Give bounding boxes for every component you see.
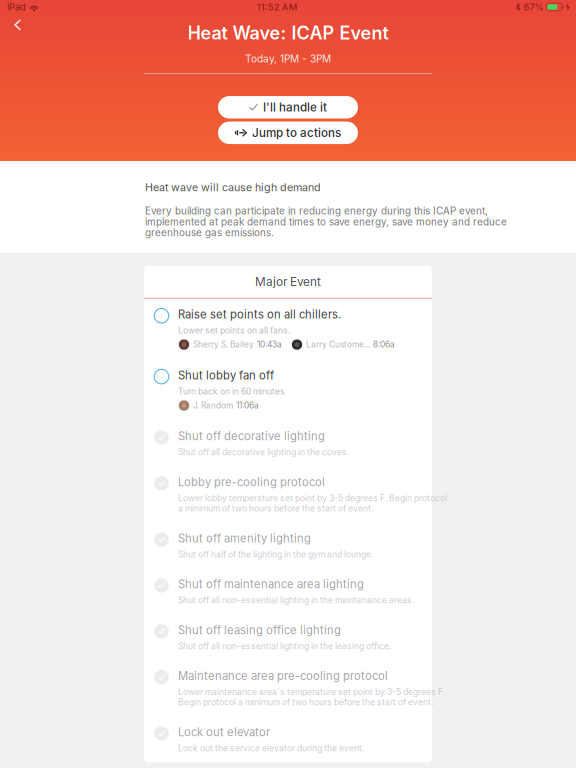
staticText: Lock out elevator (178, 725, 270, 739)
staticText: Shut lobby fan off (178, 369, 274, 382)
staticText: Lobby pre-cooling protocol (178, 475, 325, 489)
button[interactable]: Raise set points on all chillers. (144, 299, 432, 360)
staticText: Major Event (255, 274, 321, 289)
staticText: Turn back on in 60 minutes (178, 386, 285, 396)
button[interactable]: Shut off leasing office lighting (144, 614, 432, 660)
button[interactable]: Maintenance area pre-cooling protocol (144, 660, 432, 716)
staticText: Heat Wave: ICAP Event (187, 22, 388, 44)
staticText: Larry Custome... (306, 340, 370, 350)
staticText: Heat wave will cause high demand (145, 181, 321, 194)
button[interactable]: Shut off decorative lighting (144, 420, 432, 466)
staticText: Today, 1PM - 3PM (245, 53, 331, 65)
staticText: Lower lobby temperature set point by 3-5… (178, 493, 447, 514)
staticText: Jump to actions (252, 126, 341, 140)
staticText: Lower maintenance area's temperature set… (178, 687, 445, 707)
staticText: Every building can participate in reduci… (145, 205, 507, 239)
staticText: Lower set points on all fans. (178, 325, 290, 336)
button[interactable]: Shut off maintenance area lighting (144, 568, 432, 614)
staticText: Lock out the service elevator during the… (178, 743, 364, 753)
staticText: Maintenance area pre-cooling protocol (178, 669, 388, 683)
button[interactable]: Lobby pre-cooling protocol (144, 466, 432, 523)
staticText: 8:06a (373, 340, 395, 350)
staticText: iPad (7, 1, 26, 13)
staticText: J. Random (193, 400, 233, 410)
button[interactable]: Jump to actions (218, 121, 358, 144)
staticText: Shut off maintenance area lighting (178, 577, 364, 591)
button[interactable]: Back (0, 0, 33, 41)
button[interactable]: Shut lobby fan off (144, 360, 432, 420)
button[interactable]: Shut off amenity lighting (144, 523, 432, 568)
staticText: 11:06a (236, 400, 259, 410)
staticText: Shut off decorative lighting (178, 429, 325, 443)
staticText: 11:52 AM (257, 1, 298, 13)
staticText: Shut off amenity lighting (178, 532, 311, 545)
staticText: Shut off half of the lighting in the gym… (178, 549, 373, 559)
button[interactable]: Lock out elevator (144, 716, 432, 762)
staticText: Shut off all non-essential lighting in t… (178, 641, 391, 651)
staticText: 67% (523, 1, 543, 13)
staticText: Shut off all non-essential lighting in t… (178, 595, 414, 605)
button[interactable]: I'll handle it (218, 96, 358, 118)
staticText: Sherry S. Bailey (193, 340, 254, 350)
staticText: Shut off leasing office lighting (178, 623, 341, 637)
staticText: 10:43a (257, 340, 282, 350)
staticText: Shut off all decorative lighting in the … (178, 447, 349, 457)
staticText: Raise set points on all chillers. (178, 308, 341, 321)
staticText: I'll handle it (263, 100, 327, 114)
